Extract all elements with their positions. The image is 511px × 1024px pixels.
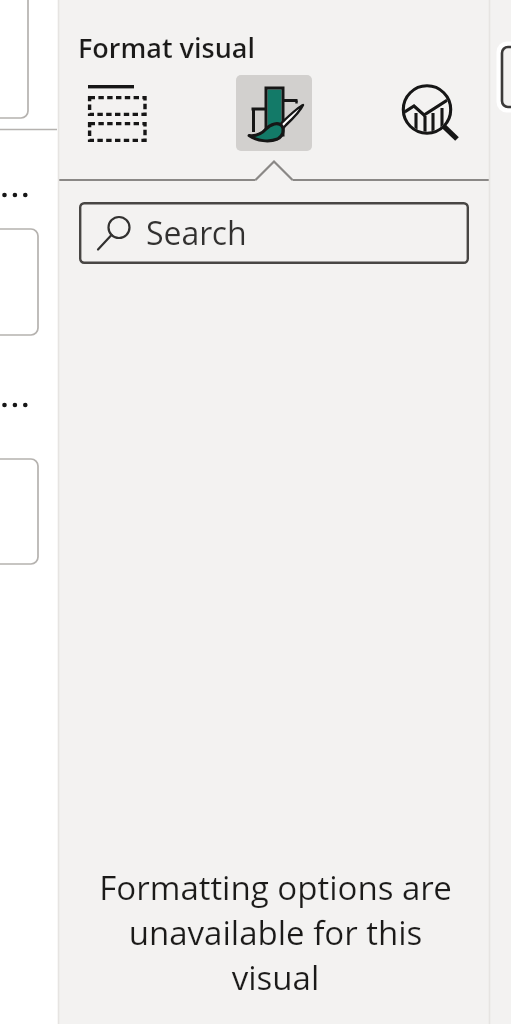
button[interactable]: Build visual xyxy=(83,75,159,151)
button[interactable]: Format visual xyxy=(236,75,312,151)
staticText: Formatting options are unavailable for t… xyxy=(90,865,461,1015)
button[interactable]: Search xyxy=(79,202,469,264)
staticText: Search xyxy=(146,211,247,255)
button[interactable]: Analytics xyxy=(392,75,468,151)
staticText: Format visual xyxy=(78,29,256,66)
